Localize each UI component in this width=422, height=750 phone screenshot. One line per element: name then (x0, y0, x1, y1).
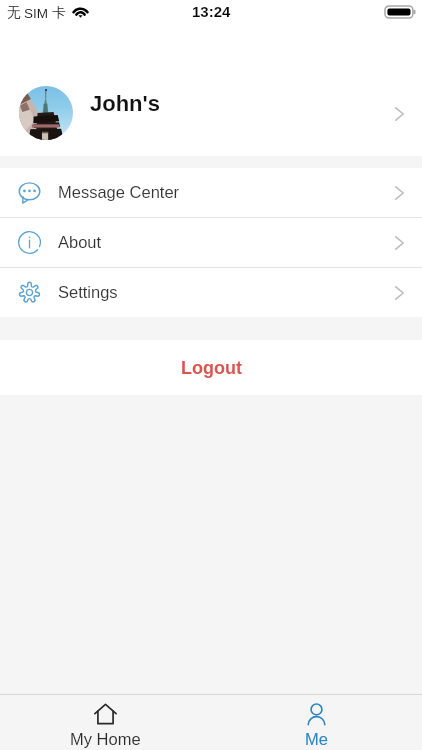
button[interactable]: Message Center (0, 168, 422, 217)
staticText: 13:24 (192, 3, 231, 20)
button[interactable]: My Home tab (0, 695, 211, 750)
staticText: Me (305, 730, 328, 748)
staticText: 无 (7, 4, 21, 21)
staticText: John's (90, 91, 161, 116)
button[interactable]: About (0, 218, 422, 267)
staticText: My Home (70, 730, 141, 748)
staticText: Message Center (58, 183, 180, 201)
staticText: Logout (181, 358, 242, 378)
button[interactable]: Settings (0, 268, 422, 317)
button[interactable]: John's (0, 28, 422, 156)
staticText: Settings (58, 283, 118, 301)
staticText: About (58, 233, 102, 251)
button[interactable]: Logout (0, 340, 422, 395)
button[interactable]: Me tab (211, 695, 422, 750)
staticText: SIM (24, 6, 49, 21)
staticText: 卡 (52, 4, 66, 21)
